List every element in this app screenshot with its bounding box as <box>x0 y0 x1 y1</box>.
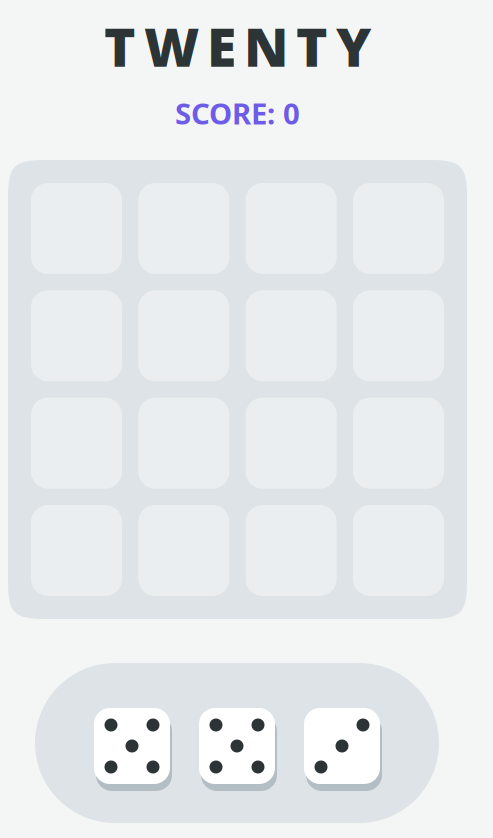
staticText: SCORE: 0 <box>175 93 300 132</box>
staticText: TWENTY <box>104 11 371 81</box>
button[interactable]: Die showing 3 <box>304 705 380 781</box>
button[interactable]: Die showing 5 <box>94 705 170 781</box>
button[interactable]: Die showing 5 <box>199 705 275 781</box>
